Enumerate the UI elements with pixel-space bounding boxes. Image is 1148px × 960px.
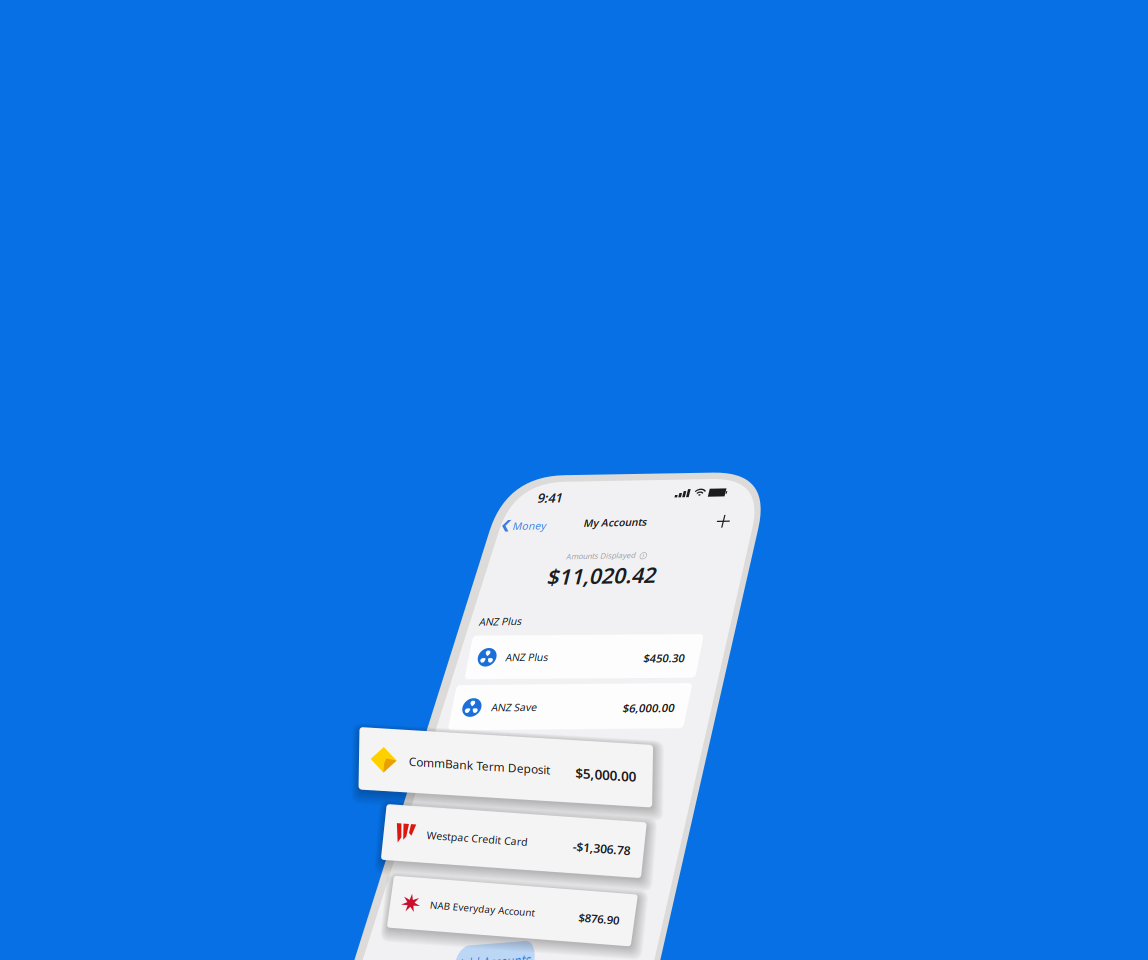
button[interactable]: CommBank Term Deposit xyxy=(0,0,1148,960)
button[interactable]: Westpac Credit Card xyxy=(0,0,1148,960)
button[interactable]: NAB Everyday Account xyxy=(0,0,1148,960)
